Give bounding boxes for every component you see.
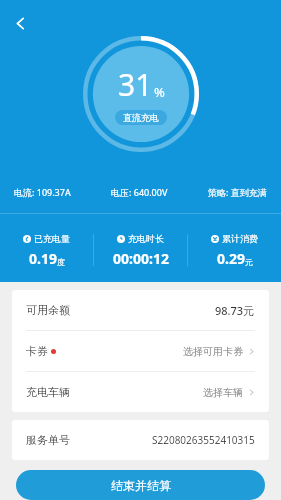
staticText: 0.29 xyxy=(217,249,245,268)
staticText: 31 xyxy=(118,64,153,105)
staticText: 策略: 直到充满 xyxy=(208,186,267,198)
staticText: 累计消费 xyxy=(222,233,258,244)
button[interactable]: 可用余额 xyxy=(12,290,269,330)
button[interactable]: 服务单号 xyxy=(12,420,269,460)
staticText: 元 xyxy=(245,257,253,267)
staticText: 0.19 xyxy=(29,249,57,268)
staticText: 结束并结算 xyxy=(111,478,171,493)
button[interactable]: Back xyxy=(6,9,34,37)
staticText: 电流: 109.37A xyxy=(14,186,71,198)
staticText: % xyxy=(154,83,165,101)
staticText: 充电车辆 xyxy=(26,385,70,399)
button[interactable]: 卡券 xyxy=(12,331,269,371)
staticText: 卡券 xyxy=(26,344,48,358)
staticText: 度 xyxy=(57,257,65,267)
staticText: 服务单号 xyxy=(26,433,70,447)
staticText: 98.73元 xyxy=(215,303,255,318)
staticText: 充电时长 xyxy=(128,233,164,244)
button[interactable]: 结束并结算 xyxy=(16,470,265,500)
staticText: 电压: 640.00V xyxy=(111,186,168,198)
staticText: 直流充电 xyxy=(123,112,159,123)
staticText: 选择可用卡券 xyxy=(183,345,243,358)
staticText: 可用余额 xyxy=(26,303,70,317)
staticText: S22080263552410315 xyxy=(152,433,255,447)
staticText: 已充电量 xyxy=(34,233,70,244)
button[interactable]: 充电车辆 xyxy=(12,372,269,412)
staticText: 选择车辆 xyxy=(203,386,243,399)
staticText: 00:00:12 xyxy=(113,249,169,268)
